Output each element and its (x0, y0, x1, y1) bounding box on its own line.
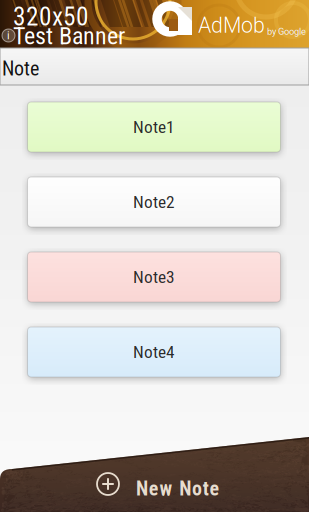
button[interactable]: New Note (0, 430, 309, 512)
staticText: Note3 (133, 267, 175, 287)
staticText: Note (2, 57, 39, 80)
staticText: Note2 (133, 192, 175, 212)
button[interactable]: Note4 (27, 327, 280, 377)
button[interactable]: Note2 (27, 177, 280, 227)
staticText: Note1 (133, 117, 175, 137)
staticText: Test Banner (13, 22, 125, 50)
staticText: AdMob (198, 13, 265, 38)
staticText: by (267, 26, 276, 37)
staticText: 320x50 (13, 2, 89, 32)
staticText: Google (278, 26, 306, 37)
staticText: i (7, 29, 10, 42)
staticText: Note4 (133, 342, 175, 362)
button[interactable]: Note1 (27, 102, 280, 152)
staticText: New Note (136, 477, 220, 500)
button[interactable]: Note3 (27, 252, 280, 302)
